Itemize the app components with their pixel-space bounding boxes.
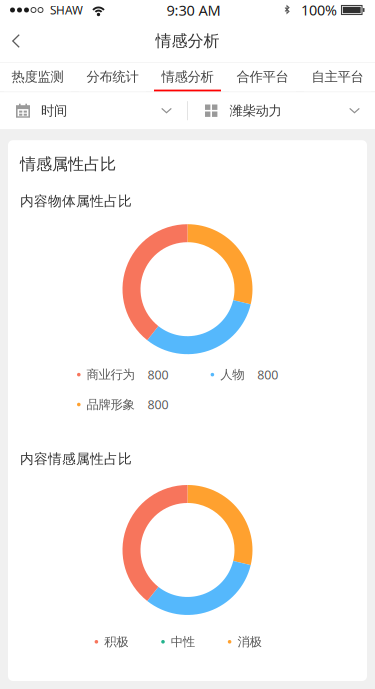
staticText: 情感分析 <box>161 69 213 85</box>
staticText: 合作平台 <box>236 69 288 85</box>
staticText: 消极 <box>237 634 261 650</box>
staticText: 内容物体属性占比 <box>20 193 132 210</box>
staticText: 热度监测 <box>11 69 63 85</box>
button[interactable]: 热度监测 <box>0 63 75 92</box>
staticText: 800 <box>148 396 169 413</box>
staticText: 时间 <box>41 102 67 119</box>
staticText: 人物 <box>220 367 244 382</box>
staticText: 潍柴动力 <box>229 102 281 119</box>
staticText: 积极 <box>104 634 128 650</box>
staticText: 自主平台 <box>311 69 363 85</box>
button[interactable]: 分布统计 <box>75 63 150 92</box>
button[interactable]: 自主平台 <box>300 63 375 92</box>
staticText: 情感分析 <box>155 31 219 51</box>
button[interactable]: Back <box>0 20 40 62</box>
staticText: 9:30 AM <box>166 0 220 20</box>
staticText: 品牌形象 <box>87 397 135 412</box>
staticText: SHAW <box>50 2 83 18</box>
staticText: 商业行为 <box>87 367 135 382</box>
button[interactable]: 合作平台 <box>225 63 300 92</box>
staticText: 100% <box>301 0 337 20</box>
button[interactable]: 时间 <box>0 92 187 129</box>
button[interactable]: 潍柴动力 <box>188 92 375 129</box>
staticText: 内容情感属性占比 <box>20 450 132 468</box>
staticText: 800 <box>257 366 278 383</box>
staticText: 分布统计 <box>86 69 138 85</box>
button[interactable]: 情感分析 <box>150 63 225 92</box>
staticText: 800 <box>148 366 169 383</box>
staticText: 中性 <box>171 634 195 650</box>
staticText: 情感属性占比 <box>20 154 116 174</box>
